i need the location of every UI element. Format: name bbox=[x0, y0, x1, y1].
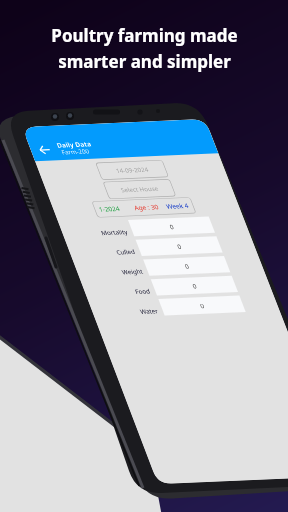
staticText: Poultry farming made smarter and simpler bbox=[51, 24, 238, 73]
